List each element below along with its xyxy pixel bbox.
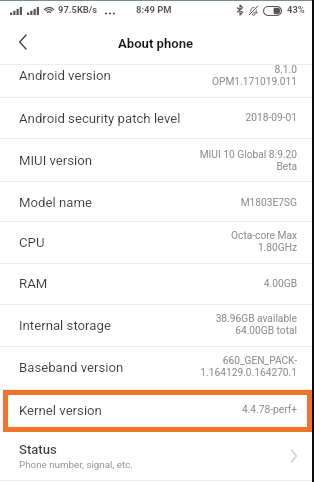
button[interactable]: Status [0, 430, 314, 480]
staticText: 4.4.78-perf+ [241, 404, 297, 416]
staticText: M1803E7SG [240, 197, 297, 209]
button[interactable]: Baseband version [0, 346, 314, 388]
staticText: 64.00GB total [235, 325, 297, 337]
staticText: Kernel version [19, 403, 102, 418]
staticText: 4.00GB [263, 278, 297, 290]
staticText: 1.80GHz [257, 242, 297, 254]
staticText: 1.164129.0.164270.1 [200, 367, 297, 379]
staticText: MIUI 10 Global 8.9.20 [199, 149, 297, 161]
staticText: 38.96GB available [215, 313, 297, 325]
staticText: 660_GEN_PACK- [222, 355, 297, 367]
staticText: Android version [19, 68, 111, 83]
staticText: About phone [118, 36, 194, 51]
staticText: 43% [287, 4, 305, 15]
staticText: Android security patch level [19, 111, 181, 126]
staticText: 2018-09-01 [245, 112, 297, 124]
staticText: Model name [19, 195, 92, 210]
staticText: Beta [276, 161, 297, 173]
button[interactable]: Internal storage [0, 304, 314, 346]
button[interactable]: Kernel version [0, 389, 314, 431]
staticText: RAM [19, 276, 48, 291]
staticText: 8:49 PM [136, 4, 172, 15]
button[interactable]: Back [0, 20, 46, 64]
staticText: MIUI version [19, 153, 93, 168]
staticText: 8.1.0 [274, 64, 297, 76]
staticText: OPM1.171019.011 [212, 76, 297, 88]
staticText: Octa-core Max [231, 230, 297, 242]
button[interactable]: Android security patch level [0, 97, 314, 137]
button[interactable]: RAM [0, 263, 314, 304]
staticText: CPU [19, 235, 45, 250]
staticText: Status [19, 442, 57, 457]
button[interactable]: MIUI version [0, 138, 314, 181]
staticText: 97.5KB/s [58, 4, 98, 15]
button[interactable]: Model name [0, 181, 314, 222]
staticText: Internal storage [19, 318, 111, 333]
staticText: Baseband version [19, 360, 124, 375]
other: Open status [291, 450, 297, 462]
staticText: Phone number, signal, etc. [19, 459, 133, 470]
button[interactable]: CPU [0, 221, 314, 263]
button[interactable]: Android version [0, 64, 314, 97]
